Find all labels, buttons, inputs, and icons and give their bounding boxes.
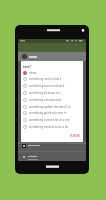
staticText: something content for in a one	[29, 118, 70, 122]
staticText: something all about it is	[29, 91, 61, 95]
staticText: something update the site of to	[29, 105, 71, 109]
staticText: something can wan mail	[29, 98, 62, 102]
staticText: something guide site over in	[29, 111, 67, 115]
button[interactable]	[22, 153, 86, 160]
button[interactable]: something guide site over in	[23, 109, 83, 116]
staticText: never	[29, 71, 37, 75]
button[interactable]: Account	[22, 54, 27, 59]
staticText: something i am is a list s	[29, 77, 62, 81]
button[interactable]: something random to be a bit	[23, 123, 83, 130]
button[interactable]: something update the site of to	[23, 103, 83, 110]
button[interactable]	[22, 142, 86, 149]
staticText: something random to be a bit	[29, 125, 69, 129]
button[interactable]: something content for in a one	[23, 116, 83, 123]
button[interactable]: something more to show it	[23, 82, 83, 89]
button[interactable]: something all about it is	[23, 89, 83, 96]
button[interactable]: never	[23, 69, 83, 76]
staticText: test?	[23, 65, 31, 69]
button[interactable]: something can wan mail	[23, 96, 83, 103]
button[interactable]: something i am is a list s	[23, 75, 83, 82]
staticText: something more to show it	[29, 84, 65, 88]
button[interactable]: SUBMIT	[70, 134, 81, 138]
